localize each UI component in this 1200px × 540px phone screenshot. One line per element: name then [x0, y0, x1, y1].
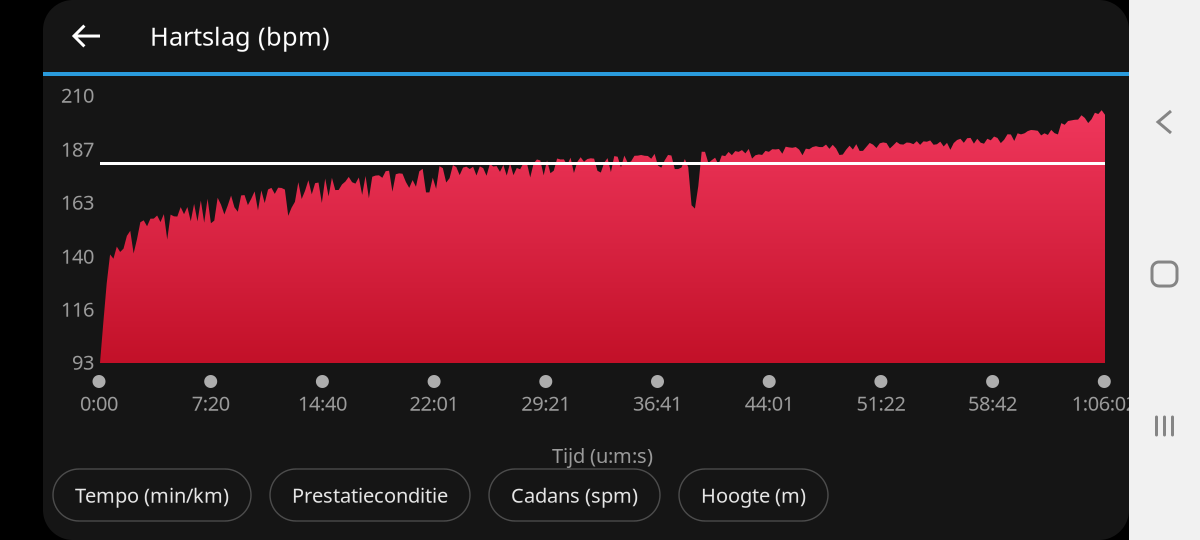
staticText: 163 [61, 189, 94, 215]
staticText: 22:01 [410, 390, 459, 416]
staticText: 210 [61, 82, 94, 108]
staticText: 44:01 [745, 390, 794, 416]
staticText: 116 [61, 296, 94, 322]
button[interactable]: Cadans (spm) [489, 469, 660, 521]
button[interactable]: Prestatieconditie [270, 469, 470, 521]
staticText: 93 [72, 349, 94, 375]
button[interactable]: Back [59, 0, 115, 72]
staticText: Hoogte (m) [701, 482, 806, 508]
button[interactable]: Recent apps [1138, 400, 1190, 452]
staticText: 140 [61, 243, 94, 269]
button[interactable]: Back [1138, 96, 1190, 148]
staticText: 36:41 [633, 390, 682, 416]
staticText: 51:22 [856, 390, 905, 416]
staticText: 7:20 [192, 390, 230, 416]
staticText: 58:42 [968, 390, 1017, 416]
staticText: Prestatieconditie [292, 482, 448, 508]
staticText: 0:00 [80, 390, 118, 416]
staticText: Tempo (min/km) [75, 482, 229, 508]
button[interactable]: Tempo (min/km) [53, 469, 251, 521]
staticText: 1:06:02 [1072, 390, 1137, 416]
staticText: Tijd (u:m:s) [552, 442, 653, 469]
staticText: Hartslag (bpm) [150, 19, 330, 53]
staticText: Cadans (spm) [511, 482, 638, 508]
staticText: 14:40 [298, 390, 347, 416]
button[interactable]: Home [1138, 248, 1190, 300]
staticText: 187 [61, 136, 94, 162]
staticText: 29:21 [521, 390, 570, 416]
button[interactable]: Hoogte (m) [679, 469, 828, 521]
